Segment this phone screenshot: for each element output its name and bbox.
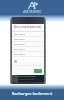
staticText: Identifiant xyxy=(14,38,25,41)
button[interactable]: Identifiant xyxy=(12,42,44,46)
button[interactable]: Identifiant xyxy=(12,37,44,41)
staticText: Rechargez facilement xyxy=(0,91,64,96)
button[interactable]: Identifiant xyxy=(12,52,44,56)
staticText: Identifiant xyxy=(14,33,25,36)
button[interactable]: Identifiant xyxy=(12,32,44,36)
staticText: Identifiant xyxy=(14,48,25,51)
staticText: Identifiant xyxy=(14,53,25,56)
staticText: Mon compte Amtronic xyxy=(14,25,42,29)
button[interactable]: Identifiant xyxy=(12,47,44,51)
staticText: Identifiant xyxy=(14,43,25,46)
staticText: AMTRONIC xyxy=(23,10,42,14)
button[interactable] xyxy=(34,69,42,73)
